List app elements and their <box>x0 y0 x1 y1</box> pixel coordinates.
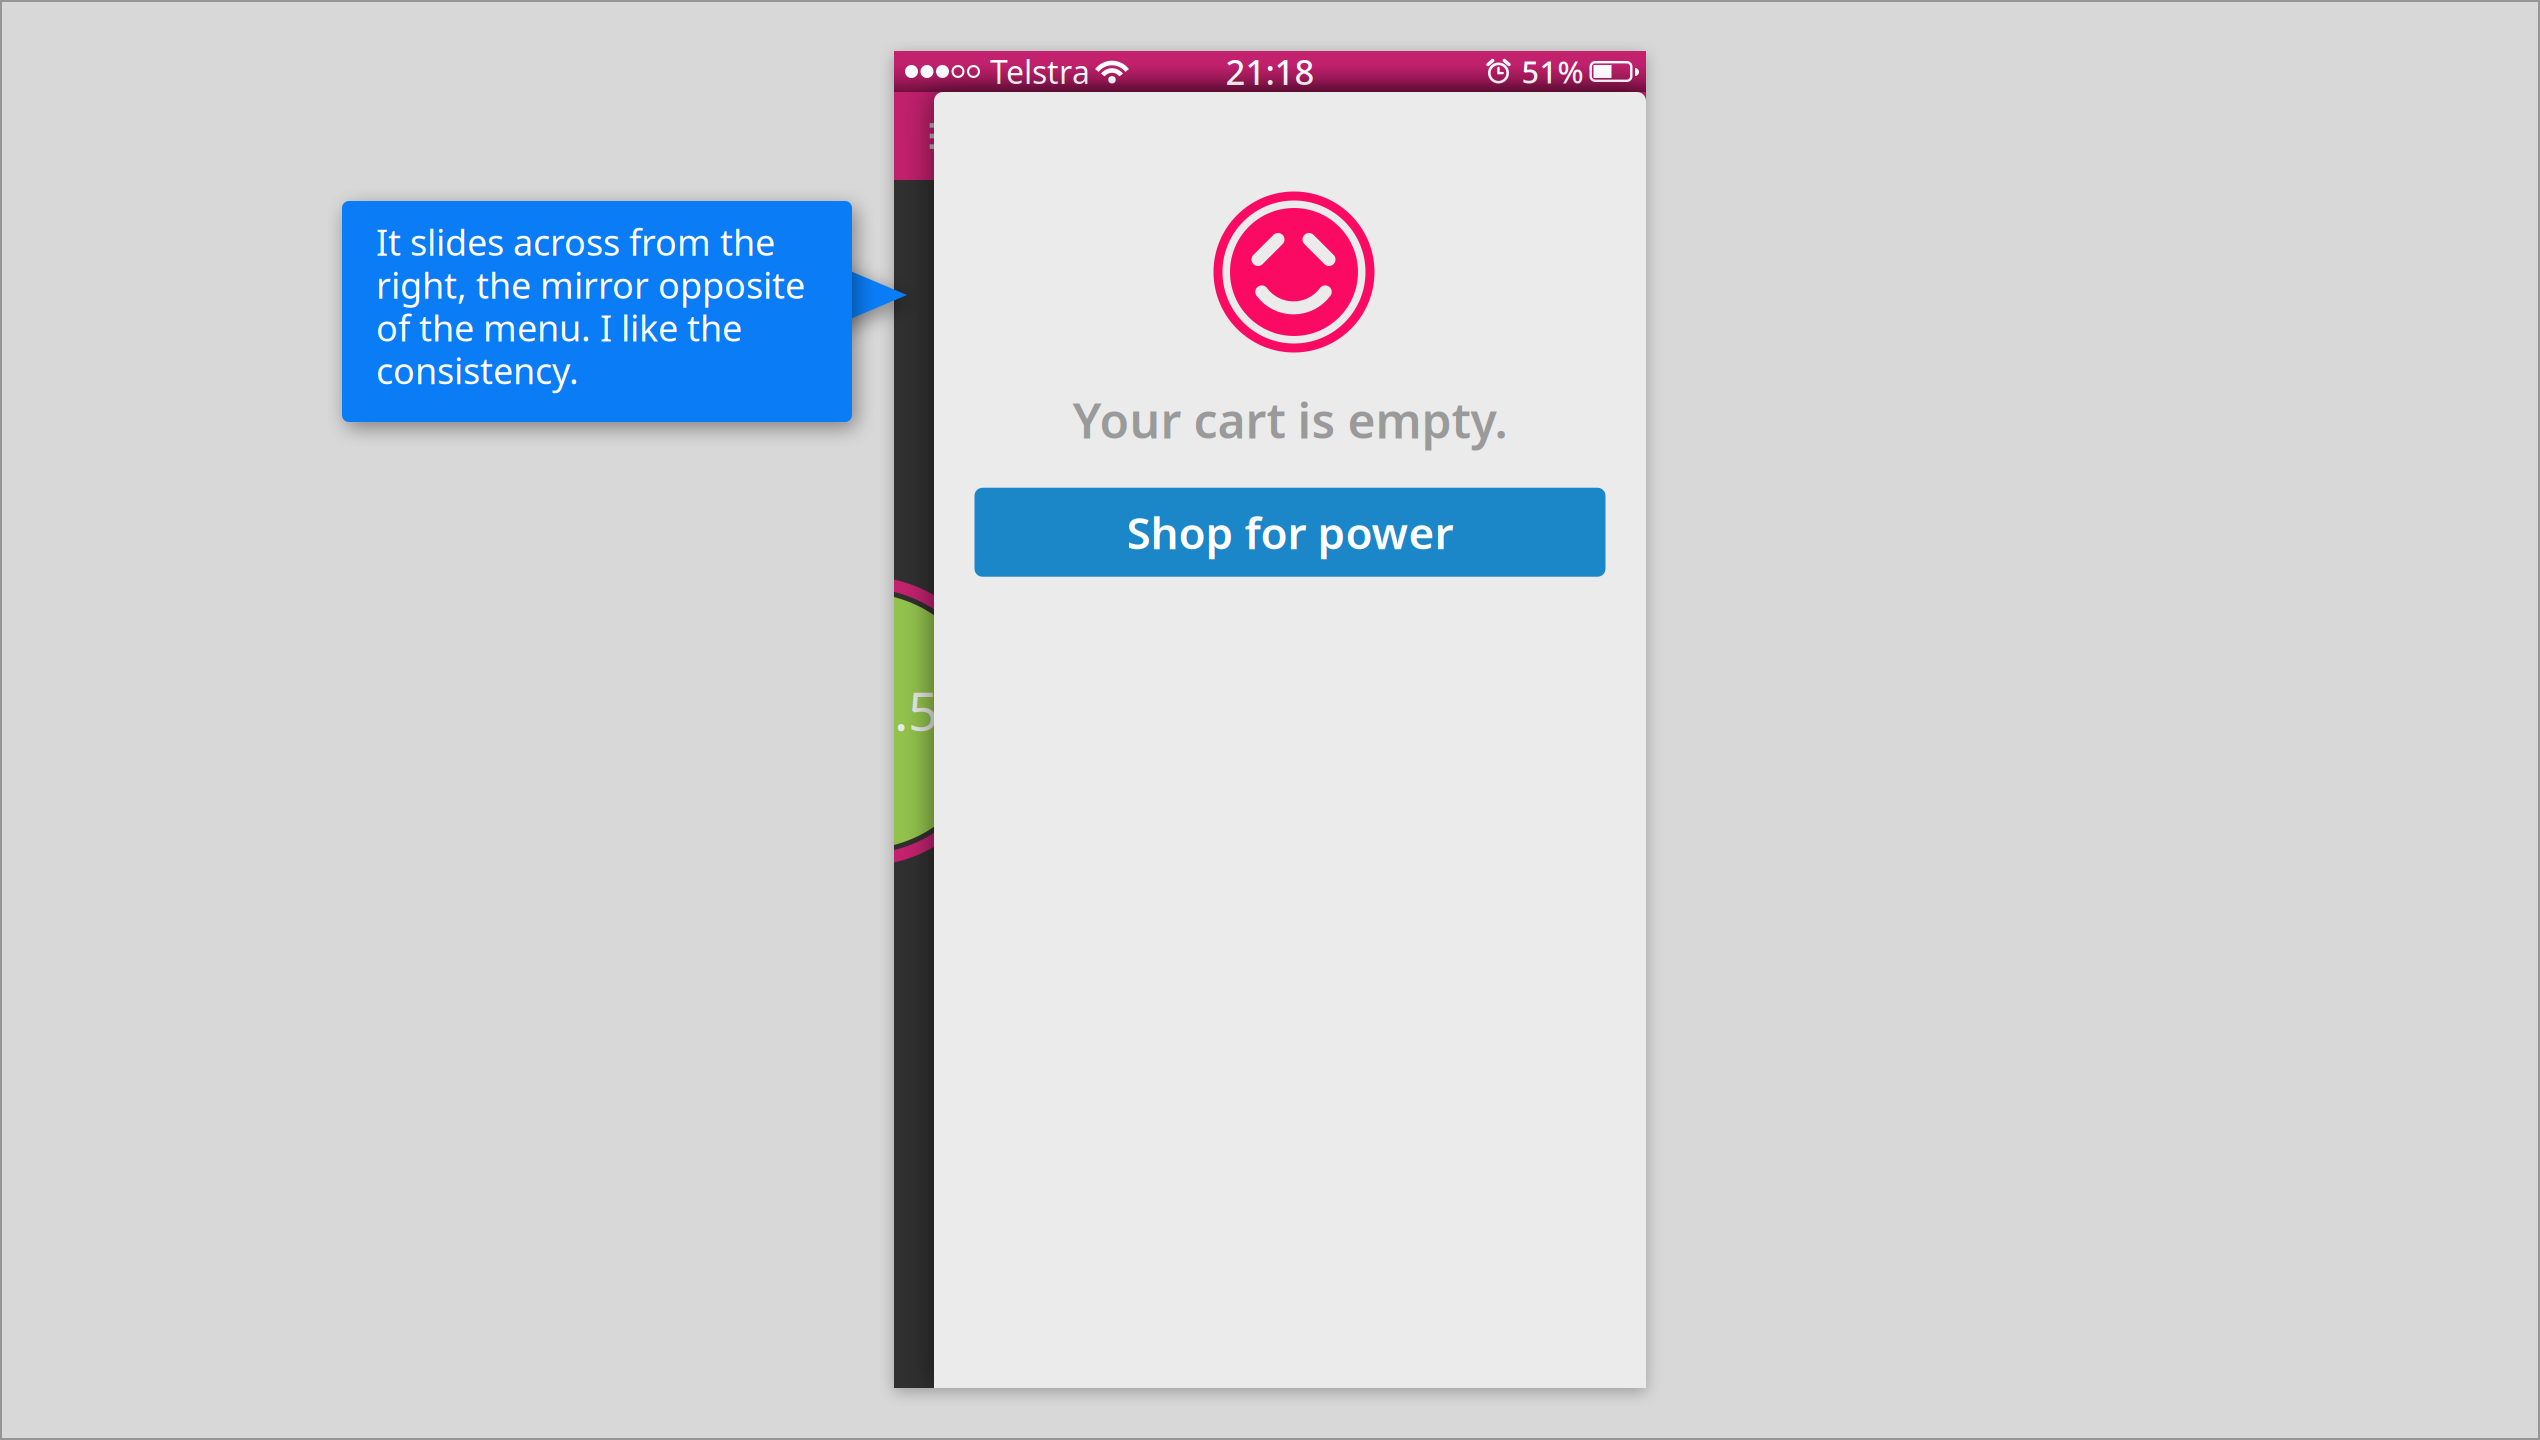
staticText: 51% <box>1521 51 1583 92</box>
button[interactable]: Shop for power <box>974 488 1605 577</box>
staticText: $8.50 <box>832 675 970 745</box>
button[interactable]: Menu <box>930 123 960 149</box>
staticText: Telstra <box>990 50 1090 93</box>
staticText: Your cart is empty. <box>1072 388 1507 452</box>
staticText: 21:18 <box>1225 48 1314 94</box>
staticText: It slides across from the right, the mir… <box>376 218 805 394</box>
staticText: Shop for power <box>1126 503 1453 561</box>
